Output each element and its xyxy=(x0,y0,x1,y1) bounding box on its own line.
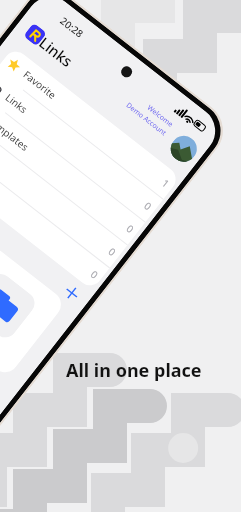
staticText: 20:28 xyxy=(57,14,86,41)
button[interactable]: Links app xyxy=(23,23,47,47)
staticText: Links xyxy=(3,90,31,117)
button[interactable]: Links xyxy=(0,69,163,222)
staticText: Templates xyxy=(0,113,32,154)
staticText: Demo Account xyxy=(124,101,169,139)
staticText: 0 xyxy=(123,221,137,236)
button[interactable]: Trash xyxy=(0,138,109,290)
button[interactable]: Welcome xyxy=(111,82,175,139)
staticText: Welcome xyxy=(145,103,175,130)
staticText: Favorite xyxy=(21,67,59,102)
staticText: 0 xyxy=(141,199,155,213)
button[interactable]: Templates xyxy=(0,92,145,245)
staticText: All in one place xyxy=(66,358,202,383)
button[interactable]: Add link xyxy=(59,280,84,305)
staticText: 0 xyxy=(106,244,119,259)
button[interactable]: Favorite xyxy=(0,46,181,199)
staticText: 1 xyxy=(159,176,172,190)
button[interactable]: Archive xyxy=(0,115,127,268)
staticText: 0 xyxy=(88,267,101,282)
button[interactable]: Design xyxy=(0,243,67,378)
staticText: Links xyxy=(35,32,78,71)
staticText: Archive xyxy=(0,136,3,168)
button[interactable]: Profile xyxy=(165,131,202,167)
